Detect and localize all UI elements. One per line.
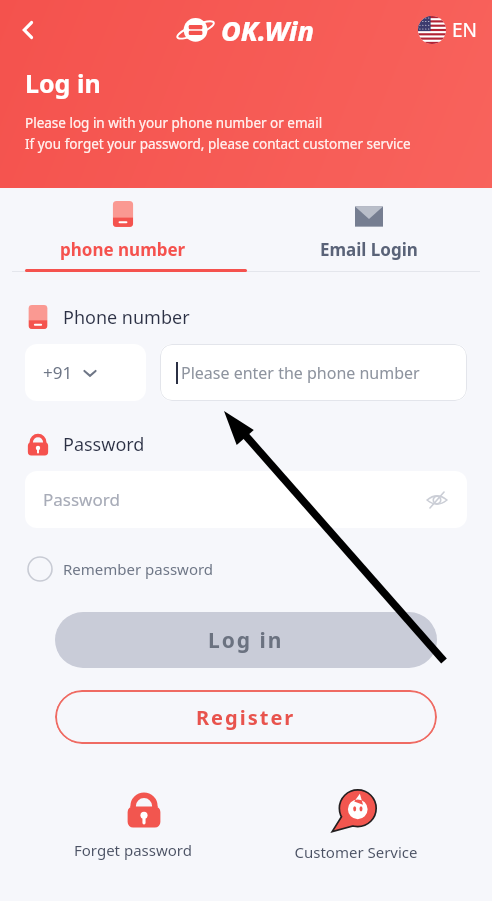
staticText: phone number — [60, 238, 186, 261]
staticText: +91 — [43, 361, 73, 384]
staticText: Log in — [25, 66, 101, 100]
staticText: Remember password — [63, 559, 214, 579]
staticText: OK.Win — [221, 12, 314, 49]
staticText: Please enter the phone number — [181, 362, 420, 384]
staticText: Forget password — [74, 840, 214, 860]
button[interactable]: Password — [25, 471, 467, 528]
button[interactable]: Email Login — [246, 188, 492, 269]
staticText: Customer Service — [294, 842, 418, 862]
staticText: EN — [452, 17, 478, 43]
button[interactable]: Log in — [55, 612, 437, 668]
staticText: Register — [196, 704, 296, 731]
button[interactable]: Remember password — [25, 552, 216, 586]
button[interactable]: Back — [8, 10, 48, 50]
staticText: Email Login — [320, 238, 418, 261]
staticText: Password — [43, 488, 120, 511]
staticText: Phone number — [63, 305, 190, 330]
button[interactable]: Forget password — [68, 782, 220, 866]
button[interactable]: Please enter the phone number — [160, 344, 467, 401]
button[interactable]: +91 — [25, 344, 146, 401]
button[interactable]: EN — [414, 12, 482, 48]
button[interactable]: Customer Service — [288, 782, 424, 868]
button[interactable]: Show password — [419, 482, 455, 518]
staticText: If you forget your password, please cont… — [25, 135, 411, 153]
button[interactable]: Register — [55, 690, 437, 744]
button[interactable]: phone number — [0, 188, 246, 269]
staticText: Log in — [208, 626, 284, 655]
staticText: Please log in with your phone number or … — [25, 114, 323, 132]
staticText: Password — [63, 432, 145, 457]
